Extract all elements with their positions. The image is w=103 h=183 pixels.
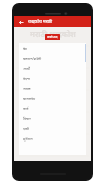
button[interactable]: सुरुवात	[19, 133, 86, 143]
staticText: आर्थी	[23, 66, 30, 71]
button[interactable]: दाबी	[19, 123, 86, 133]
staticText: बाजारपेठ	[23, 96, 36, 101]
button[interactable]: मराठी शब्द	[45, 34, 60, 40]
button[interactable]: आर्थी	[19, 63, 86, 73]
button[interactable]: विचार	[19, 113, 86, 123]
staticText: बलवान/शक्ती	[23, 56, 42, 61]
staticText: मराठी शब्द	[47, 35, 58, 39]
button[interactable]: बाजारपेठ	[19, 93, 86, 103]
staticText: विचार	[23, 116, 31, 121]
button[interactable]: बलवान/शक्ती	[19, 53, 86, 63]
staticText: बेड	[23, 46, 27, 51]
button[interactable]: कर्ज	[19, 103, 86, 113]
staticText: जवळ	[23, 86, 31, 91]
staticText: वेदना	[23, 76, 30, 81]
button[interactable]: Back	[17, 18, 25, 26]
button[interactable]: बेड	[19, 43, 86, 53]
staticText: दाबी	[23, 126, 29, 131]
button[interactable]: जवळ	[19, 83, 86, 93]
staticText: सुरुवात	[23, 136, 33, 141]
staticText: शब्दकोश मराठी	[28, 19, 53, 25]
staticText: कर्ज	[23, 106, 29, 111]
button[interactable]: वेदना	[19, 73, 86, 83]
staticText: मराठी शब्दकोश	[30, 29, 76, 39]
